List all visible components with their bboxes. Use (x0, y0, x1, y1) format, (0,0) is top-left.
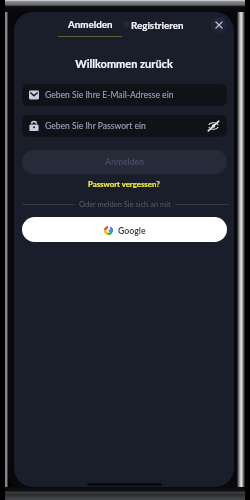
staticText: Willkommen zurück (14, 57, 234, 70)
button[interactable]: Close (211, 17, 227, 33)
other: Show password (208, 121, 219, 131)
button[interactable]: Anmelden (22, 150, 227, 174)
staticText: Anmelden (105, 157, 145, 167)
staticText: Registrieren (131, 19, 184, 31)
staticText: Google (118, 225, 146, 235)
staticText: Geben Sie Ihr Passwort ein (45, 121, 146, 131)
button[interactable]: Anmelden (58, 18, 122, 37)
staticText: Geben Sie Ihre E-Mail-Adresse ein (45, 90, 174, 100)
staticText: Oder melden Sie sich an mit (79, 200, 171, 209)
button[interactable]: Registrieren (123, 18, 184, 31)
button[interactable]: Geben Sie Ihr Passwort ein (22, 115, 227, 137)
staticText: Anmelden (68, 18, 113, 30)
button[interactable]: Passwort vergessen? (88, 179, 160, 188)
button[interactable]: Google (22, 217, 227, 242)
button[interactable]: Geben Sie Ihre E-Mail-Adresse ein (22, 84, 227, 106)
